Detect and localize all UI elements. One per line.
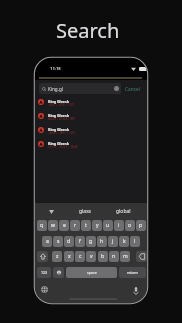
button[interactable]: space bbox=[66, 267, 117, 278]
staticText: King Gleesk bbox=[48, 113, 69, 118]
staticText: c bbox=[79, 253, 82, 260]
button[interactable]: q bbox=[37, 220, 47, 231]
button[interactable]: King Gleesk bbox=[35, 139, 142, 153]
button[interactable]: o bbox=[125, 220, 135, 231]
button[interactable]: i bbox=[114, 220, 124, 231]
staticText: space bbox=[87, 270, 97, 275]
button[interactable]: t bbox=[81, 220, 91, 231]
button[interactable]: l bbox=[130, 236, 140, 247]
button[interactable]: Shift bbox=[37, 251, 48, 262]
button[interactable]: r bbox=[70, 220, 80, 231]
button[interactable]: g bbox=[86, 236, 96, 247]
staticText: x bbox=[68, 253, 71, 260]
button[interactable]: f bbox=[75, 236, 85, 247]
button[interactable]: u bbox=[103, 220, 113, 231]
staticText: -4668 | -3897 | 1437 bbox=[48, 131, 75, 135]
staticText: f bbox=[79, 238, 81, 245]
button[interactable]: Clear text bbox=[114, 86, 119, 91]
button[interactable]: x bbox=[64, 251, 74, 262]
button[interactable]: Cancel bbox=[125, 86, 140, 93]
button[interactable]: glass bbox=[79, 208, 91, 215]
staticText: l bbox=[134, 238, 136, 245]
staticText: 11:18 bbox=[50, 66, 61, 72]
staticText: g bbox=[89, 238, 93, 245]
staticText: v bbox=[90, 253, 93, 260]
staticText: n bbox=[112, 253, 116, 260]
staticText: j bbox=[112, 238, 114, 245]
staticText: u bbox=[106, 222, 110, 229]
button[interactable]: d bbox=[64, 236, 74, 247]
button[interactable]: z bbox=[52, 251, 62, 262]
button[interactable]: Voice input bbox=[49, 210, 54, 214]
button[interactable]: p bbox=[136, 220, 146, 231]
staticText: t bbox=[85, 222, 87, 229]
button[interactable]: s bbox=[53, 236, 63, 247]
staticText: 40023 | 81334 | 989 bbox=[48, 117, 75, 121]
staticText: y bbox=[96, 222, 99, 229]
staticText: King Gleesk bbox=[48, 99, 69, 104]
button[interactable]: w bbox=[48, 220, 58, 231]
staticText: King Gleesk bbox=[48, 127, 69, 132]
button[interactable]: global bbox=[116, 208, 131, 215]
staticText: m bbox=[123, 253, 128, 260]
button[interactable]: j bbox=[108, 236, 118, 247]
staticText: i bbox=[118, 222, 120, 229]
staticText: 23916 | 35021 | -8648 bbox=[48, 145, 78, 149]
staticText: b bbox=[101, 253, 105, 260]
staticText: s bbox=[57, 238, 60, 245]
button[interactable]: Backspace bbox=[136, 251, 147, 262]
staticText: return bbox=[127, 270, 138, 275]
button[interactable]: k bbox=[119, 236, 129, 247]
button[interactable]: Dictate bbox=[133, 287, 139, 295]
button[interactable]: a bbox=[42, 236, 52, 247]
button[interactable]: b bbox=[98, 251, 108, 262]
staticText: z bbox=[56, 253, 59, 260]
button[interactable]: King Gleesk bbox=[35, 111, 142, 125]
staticText: -4491 | 3578 | 1001 bbox=[48, 103, 75, 107]
staticText: King Gleesk bbox=[48, 141, 69, 146]
button[interactable]: e bbox=[59, 220, 69, 231]
staticText: o bbox=[128, 222, 132, 229]
staticText: p bbox=[139, 222, 143, 229]
button[interactable]: King Gleesk bbox=[35, 125, 142, 139]
button[interactable]: m bbox=[120, 251, 130, 262]
staticText: Search bbox=[56, 17, 120, 44]
button[interactable]: y bbox=[92, 220, 102, 231]
button[interactable]: King.gl bbox=[39, 83, 121, 94]
button[interactable]: Change keyboard bbox=[41, 286, 48, 293]
staticText: k bbox=[123, 238, 126, 245]
staticText: w bbox=[51, 222, 55, 229]
button[interactable]: 123 bbox=[37, 267, 51, 278]
staticText: r bbox=[74, 222, 77, 229]
button[interactable]: King Gleesk bbox=[35, 97, 142, 111]
staticText: d bbox=[67, 238, 71, 245]
staticText: King.gl bbox=[48, 86, 63, 92]
button[interactable]: v bbox=[86, 251, 96, 262]
button[interactable]: n bbox=[109, 251, 119, 262]
button[interactable]: return bbox=[119, 267, 146, 278]
button[interactable]: h bbox=[97, 236, 107, 247]
button[interactable]: c bbox=[75, 251, 85, 262]
staticText: a bbox=[46, 238, 49, 245]
staticText: e bbox=[63, 222, 66, 229]
staticText: h bbox=[100, 238, 104, 245]
button[interactable]: Emoji bbox=[53, 267, 64, 278]
staticText: 123 bbox=[41, 270, 48, 275]
staticText: q bbox=[40, 222, 44, 229]
